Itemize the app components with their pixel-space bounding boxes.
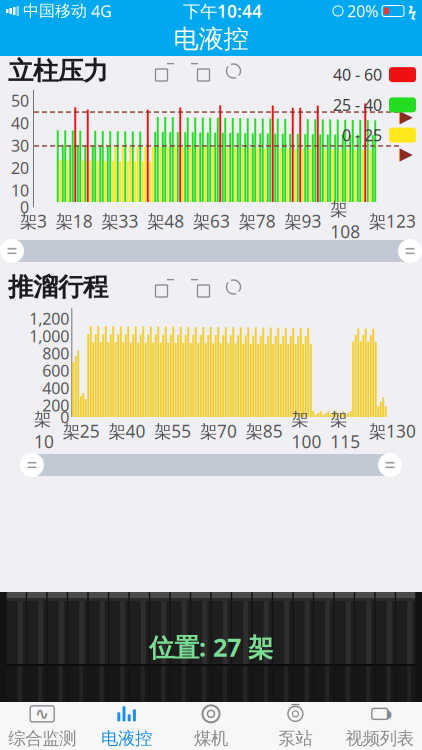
button[interactable]: 煤机 [169, 702, 253, 750]
staticText: 架85 [246, 419, 283, 442]
staticText: 电液控 [173, 23, 248, 54]
staticText: 电液控 [101, 728, 152, 749]
staticText: 位置: 27 架 [149, 630, 273, 664]
staticText: 架25 [63, 419, 100, 442]
staticText: 架10 [34, 409, 54, 453]
staticText: 600 [42, 360, 69, 381]
button[interactable]: 放大 [156, 277, 175, 296]
staticText: 架78 [239, 209, 276, 232]
staticText: 架55 [154, 419, 191, 442]
staticText: ∿ [35, 704, 50, 724]
staticText: 架63 [193, 209, 230, 232]
staticText: 40 - 60 [333, 64, 382, 85]
staticText: 50 [11, 90, 29, 111]
staticText: ϟ [408, 1, 416, 21]
staticText: 架18 [56, 209, 93, 232]
staticText: 架115 [330, 409, 360, 453]
button[interactable]: 放大 [156, 61, 175, 80]
button[interactable]: 刷新 [224, 277, 243, 296]
button[interactable]: ◗ [338, 702, 422, 750]
staticText: 400 [42, 377, 69, 398]
staticText: 25 - 40 [333, 94, 382, 115]
staticText: 立柱压力 [8, 55, 108, 86]
button[interactable]: 缩小 [190, 61, 209, 80]
staticText: 架130 [369, 419, 416, 442]
staticText: 4G [91, 0, 112, 22]
staticText: 煤机 [194, 728, 228, 749]
button[interactable]: ∿ [0, 702, 84, 750]
staticText: 视频列表 [346, 728, 414, 749]
button[interactable]: 缩小 [190, 277, 209, 296]
staticText: 20 [11, 157, 29, 178]
staticText: 架93 [284, 209, 321, 232]
staticText: 推溜行程 [8, 271, 108, 302]
staticText: 中国移动 [23, 1, 87, 21]
staticText: 架108 [330, 199, 360, 243]
button[interactable]: 刷新 [224, 61, 243, 80]
staticText: ◗ [386, 707, 392, 721]
staticText: 架123 [369, 209, 416, 232]
staticText: 架3 [20, 209, 47, 232]
staticText: 0 - 25 [342, 124, 382, 146]
staticText: 800 [42, 343, 69, 364]
staticText: 架100 [291, 409, 321, 453]
staticText: 架33 [101, 209, 138, 232]
staticText: 0 [60, 406, 69, 428]
staticText: 200 [42, 395, 69, 416]
staticText: 1,200 [29, 308, 69, 329]
staticText: 1,000 [29, 325, 69, 346]
staticText: 10 [11, 180, 29, 201]
staticText: ▶ [399, 106, 412, 126]
staticText: 综合监测 [8, 728, 76, 749]
button[interactable]: 泵站 [253, 702, 338, 750]
staticText: 架40 [108, 419, 145, 442]
staticText: 20% [347, 0, 378, 22]
staticText: 泵站 [278, 728, 312, 749]
staticText: ▶ [399, 144, 412, 163]
staticText: 0 [20, 196, 29, 218]
staticText: 30 [11, 135, 29, 156]
button[interactable]: 电液控 [84, 702, 169, 750]
staticText: 架70 [200, 419, 237, 442]
staticText: 架48 [147, 209, 184, 232]
staticText: 40 [11, 112, 29, 134]
staticText: 下午10:44 [183, 0, 262, 22]
